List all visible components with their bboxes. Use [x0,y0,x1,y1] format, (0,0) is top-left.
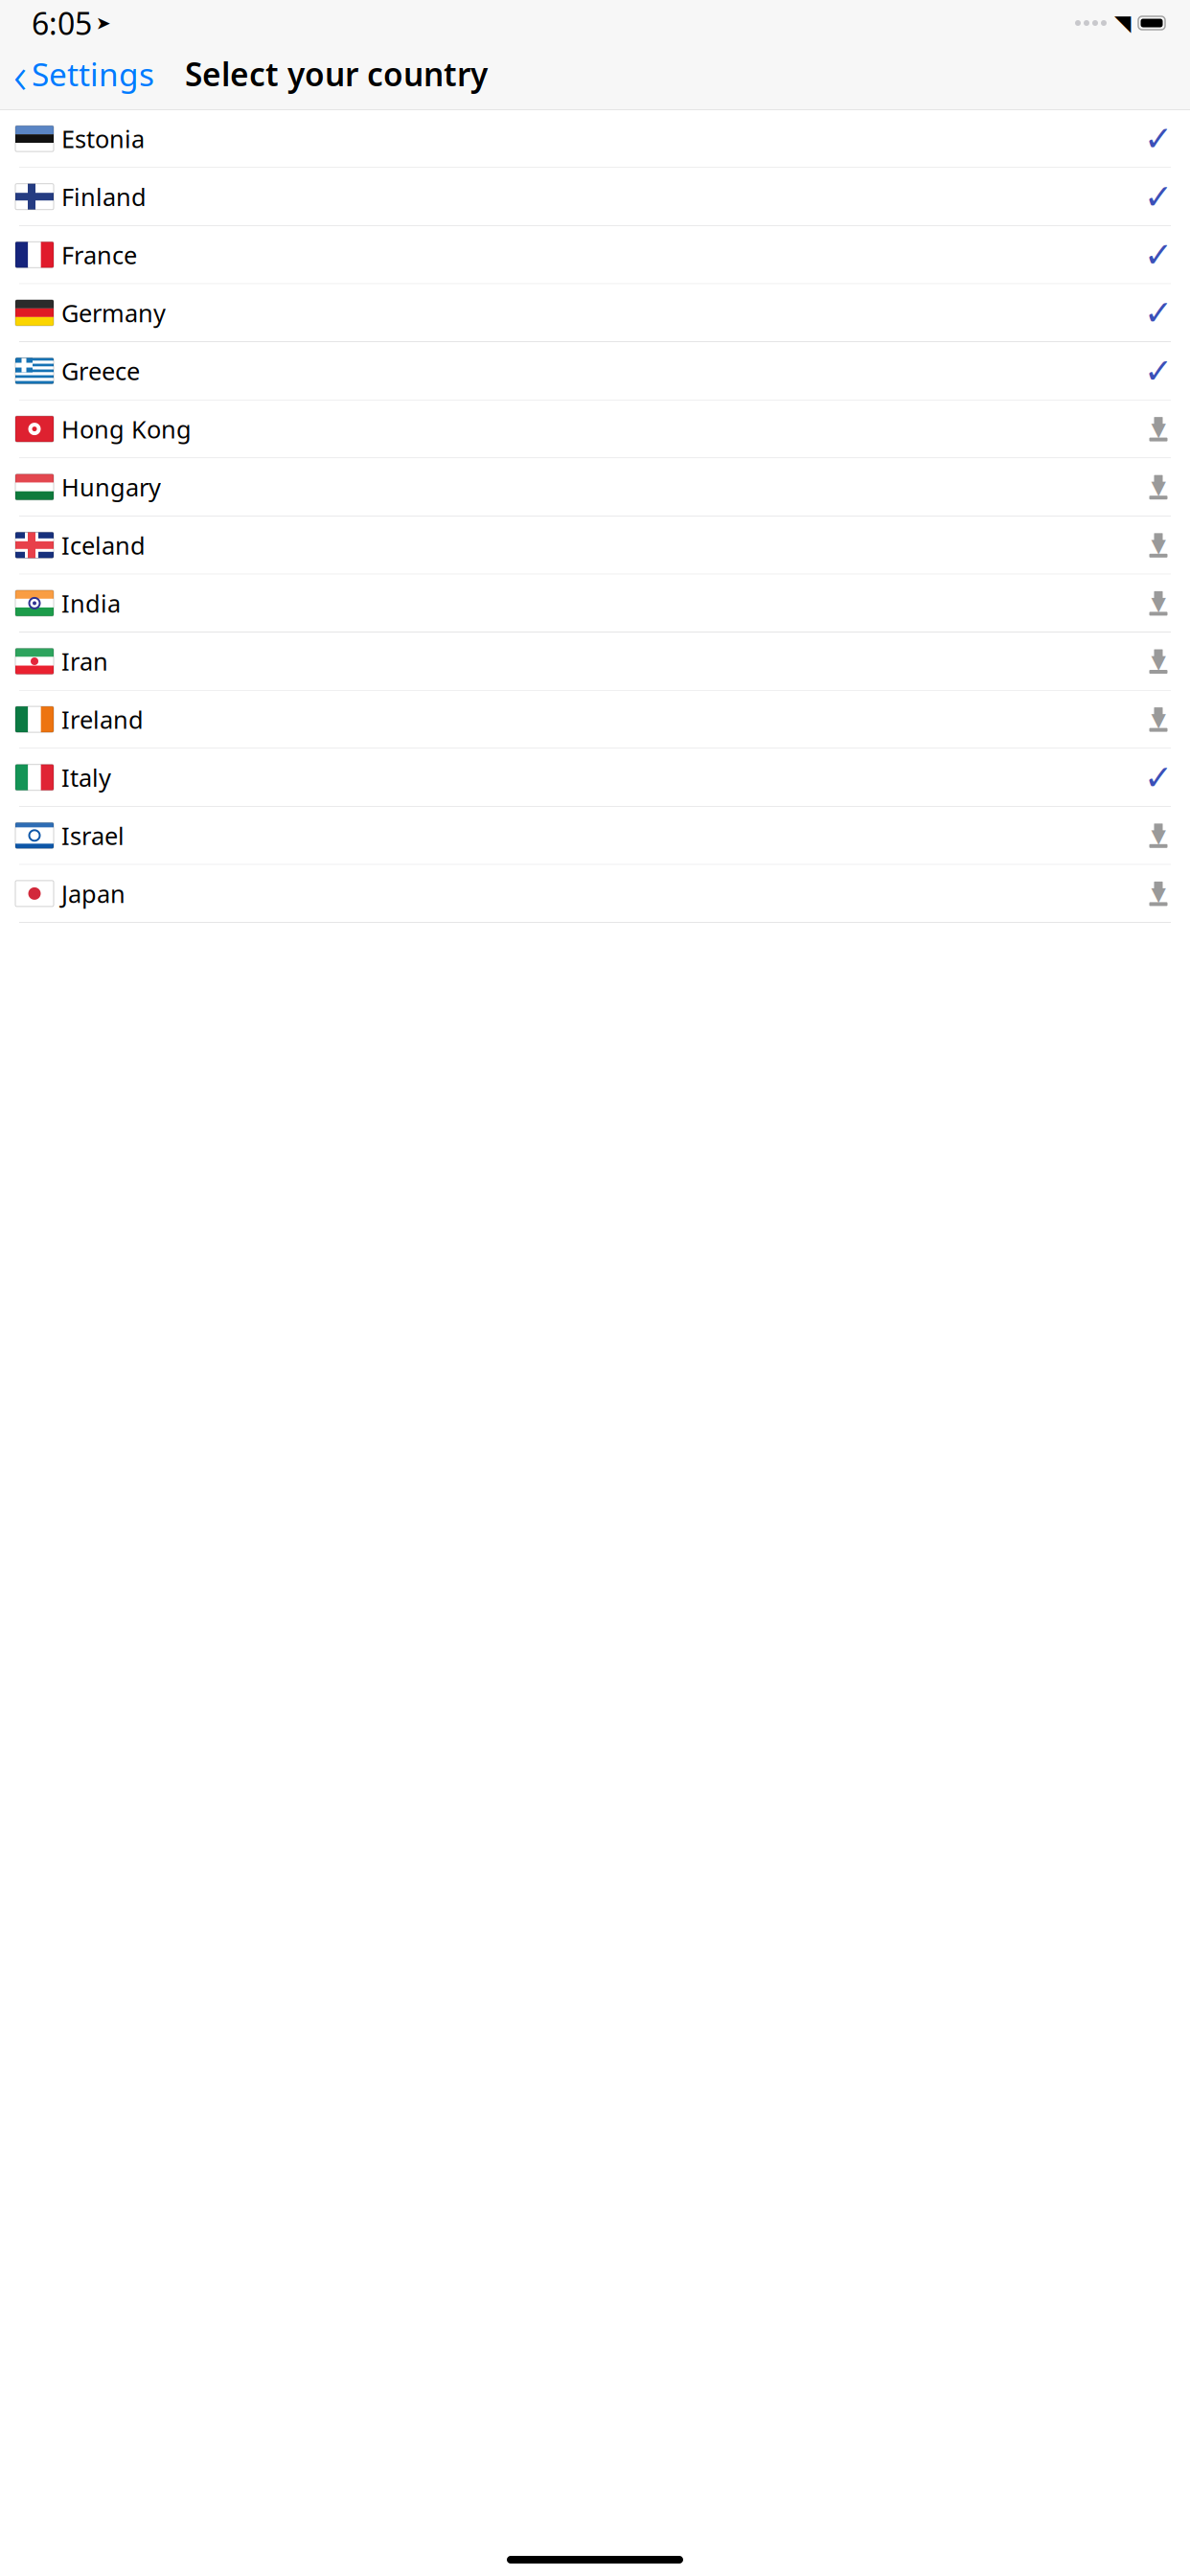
staticText: Israel [61,819,125,852]
staticText: Ireland [61,703,144,735]
staticText: Iceland [61,529,146,561]
button[interactable]: Ireland [0,691,1190,749]
staticText: India [61,587,121,619]
staticText: Estonia [61,122,145,155]
staticText: ▼ [1151,477,1166,498]
staticText: Select your country [185,53,488,95]
staticText: ✓ [1144,119,1173,158]
button[interactable]: Italy [0,749,1190,807]
button[interactable]: Iceland [0,516,1190,574]
staticText: Italy [61,761,111,793]
staticText: ▼ [1151,535,1166,557]
staticText: 6:05 [32,3,92,43]
staticText: Hungary [61,471,161,503]
staticText: ➤ [96,13,111,33]
button[interactable]: Greece [0,342,1190,400]
staticText: ▼ [1151,651,1166,673]
staticText: Iran [61,645,108,677]
staticText: ✓ [1144,293,1173,332]
staticText: ◥ [1114,11,1131,35]
button[interactable]: India [0,574,1190,632]
button[interactable]: Hong Kong [0,400,1190,458]
staticText: Hong Kong [61,413,192,445]
staticText: Settings [32,53,154,95]
staticText: France [61,239,137,271]
staticText: ✓ [1144,177,1173,216]
staticText: Germany [61,297,166,329]
button[interactable]: France [0,226,1190,284]
staticText: ✓ [1144,235,1173,274]
staticText: ✓ [1144,351,1173,391]
button[interactable]: Germany [0,284,1190,342]
button[interactable]: Israel [0,807,1190,865]
staticText: ▼ [1151,419,1166,440]
button[interactable]: Japan [0,865,1190,923]
staticText: ▼ [1151,709,1166,731]
button[interactable]: Estonia [0,110,1190,168]
button[interactable]: ‹ [0,48,162,100]
staticText: ✓ [1144,758,1173,797]
staticText: Finland [61,181,147,213]
button[interactable]: Iran [0,632,1190,691]
button[interactable]: Hungary [0,458,1190,516]
staticText: ▼ [1151,825,1166,847]
staticText: ▼ [1151,593,1166,615]
staticText: ‹ [13,40,27,108]
button[interactable]: Finland [0,168,1190,226]
staticText: Japan [61,877,126,910]
staticText: ▼ [1151,883,1166,905]
staticText: Greece [61,355,140,387]
